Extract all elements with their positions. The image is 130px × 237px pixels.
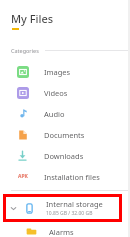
staticText: APK (18, 173, 28, 180)
button[interactable]: Documents (0, 124, 130, 145)
button[interactable]: Audio (0, 103, 130, 124)
button[interactable]: Images (0, 61, 130, 82)
staticText: 10.85 GB / 32.00 GB (46, 210, 93, 217)
button[interactable]: Collapse (3, 194, 122, 222)
staticText: My Files (11, 11, 54, 26)
staticText: Documents (44, 130, 85, 140)
button[interactable]: Alarms (0, 226, 130, 237)
staticText: Audio (44, 109, 65, 119)
staticText: Alarms (49, 227, 74, 237)
staticText: Internal storage (46, 199, 103, 209)
staticText: Videos (44, 88, 68, 98)
button[interactable]: Downloads (0, 145, 130, 166)
button[interactable]: Videos (0, 82, 130, 103)
staticText: Installation files (44, 172, 100, 182)
button[interactable]: APK (0, 166, 130, 187)
button[interactable]: Collapse (8, 203, 19, 214)
staticText: Downloads (44, 151, 84, 161)
staticText: Images (44, 67, 71, 77)
staticText: Categories (11, 47, 39, 54)
